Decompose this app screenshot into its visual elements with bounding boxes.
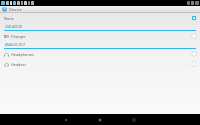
staticText: ANALOG OUT <box>5 43 26 47</box>
button[interactable]: Not selected <box>192 34 196 38</box>
staticText: Headset <box>11 62 192 67</box>
button[interactable]: Back <box>59 114 73 125</box>
button[interactable]: Recent apps <box>127 114 141 125</box>
button[interactable]: None <box>0 13 200 23</box>
button[interactable]: Up, Device <box>0 6 25 13</box>
button[interactable]: Home <box>93 114 107 125</box>
button[interactable]: Not selected <box>192 52 196 56</box>
staticText: Device <box>9 7 22 13</box>
staticText: USB AUDIO <box>5 25 23 29</box>
button[interactable]: Headphones <box>0 49 200 59</box>
button[interactable]: Charger <box>0 31 200 41</box>
button[interactable]: Selected <box>192 16 196 20</box>
staticText: Headphones <box>11 52 192 57</box>
button[interactable]: Not selected <box>192 62 196 66</box>
staticText: Charger <box>11 34 192 39</box>
staticText: None <box>4 16 192 21</box>
button[interactable]: Headset <box>0 59 200 69</box>
